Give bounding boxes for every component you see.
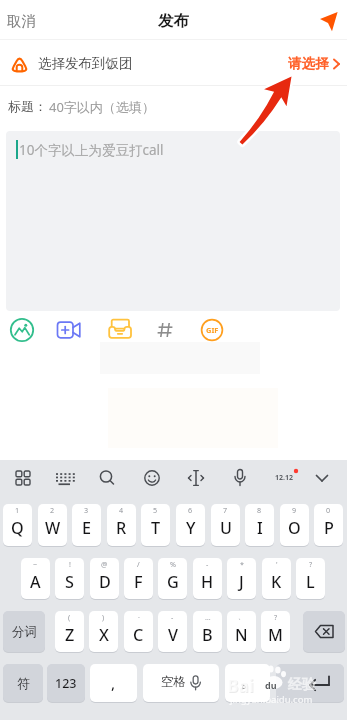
button[interactable]: GIF <box>200 318 224 342</box>
button[interactable] <box>308 464 336 492</box>
button[interactable] <box>56 318 84 342</box>
button[interactable]: 8 <box>245 504 274 546</box>
button[interactable] <box>93 464 121 492</box>
button[interactable]: / <box>124 558 153 599</box>
button[interactable]: 10个字以上为爱豆打call <box>6 131 340 311</box>
staticText: 10个字以上为爱豆打call <box>19 141 164 159</box>
staticText: K <box>271 571 282 593</box>
button[interactable] <box>103 317 133 341</box>
button[interactable]: 。 <box>225 664 270 702</box>
button[interactable] <box>303 611 345 652</box>
button[interactable]: % <box>158 558 187 599</box>
staticText: 7 <box>223 505 228 515</box>
button[interactable] <box>226 464 254 492</box>
button[interactable]: 分词 <box>3 611 45 652</box>
button[interactable]: 9 <box>280 504 309 546</box>
staticText: W <box>45 517 61 539</box>
button[interactable]: ! <box>55 558 84 599</box>
button[interactable]: ? <box>261 611 290 652</box>
staticText: 分词 <box>12 624 37 640</box>
staticText: 4 <box>119 505 124 515</box>
button[interactable]: , <box>90 664 137 702</box>
button[interactable] <box>182 464 210 492</box>
staticText: Bai <box>228 675 255 698</box>
staticText: ' <box>276 559 278 569</box>
staticText: - <box>206 559 209 569</box>
button[interactable] <box>156 321 174 339</box>
staticText: 5 <box>153 505 158 515</box>
staticText: 9 <box>292 505 297 515</box>
staticText: 。 <box>241 674 255 692</box>
staticText: F <box>134 571 143 593</box>
button[interactable] <box>9 464 37 492</box>
button[interactable]: 12.12 <box>272 464 302 492</box>
button[interactable]: 4 <box>107 504 136 546</box>
staticText: % <box>170 559 176 569</box>
button[interactable]: 3 <box>72 504 101 546</box>
button[interactable]: ~ <box>21 558 50 599</box>
staticText: ? <box>309 559 313 569</box>
button[interactable]: 1 <box>3 504 32 546</box>
button[interactable]: 符 <box>3 664 43 702</box>
button[interactable]: @ <box>90 558 119 599</box>
button[interactable]: 取消 <box>0 0 60 40</box>
staticText: D <box>99 571 111 593</box>
staticText: ( <box>68 612 71 622</box>
staticText: R <box>116 517 127 539</box>
staticText: … <box>205 612 211 622</box>
staticText: ? <box>274 612 278 622</box>
button[interactable]: 、 <box>227 611 256 652</box>
button[interactable]: 0 <box>314 504 343 546</box>
staticText: 、 <box>238 612 246 621</box>
staticText: 6 <box>188 505 193 515</box>
button[interactable]: 2 <box>38 504 67 546</box>
button[interactable]: 7 <box>211 504 240 546</box>
staticText: @ <box>101 559 108 569</box>
button[interactable] <box>143 664 219 702</box>
staticText: L <box>306 571 315 593</box>
staticText: 1 <box>15 505 20 515</box>
staticText: du <box>265 679 277 691</box>
staticText: 发布 <box>158 11 189 31</box>
staticText: 空格 <box>161 674 186 690</box>
button[interactable]: 选择发布到饭团 <box>0 40 347 85</box>
button[interactable]: * <box>227 558 256 599</box>
staticText: GIF <box>206 325 219 335</box>
staticText: Y <box>186 517 196 539</box>
button[interactable]: ? <box>296 558 325 599</box>
button[interactable] <box>276 664 344 702</box>
staticText: S <box>65 571 74 593</box>
button[interactable]: - <box>193 558 222 599</box>
button[interactable]: ( <box>55 611 84 652</box>
staticText: 选择发布到饭团 <box>38 55 133 72</box>
staticText: U <box>220 517 232 539</box>
staticText: 12.12 <box>275 473 293 483</box>
button[interactable]: 6 <box>176 504 205 546</box>
staticText: I <box>257 517 263 539</box>
button[interactable]: … <box>193 611 222 652</box>
button[interactable]: - <box>158 611 187 652</box>
staticText: 标题： <box>8 98 47 114</box>
button[interactable] <box>138 464 166 492</box>
staticText: H <box>201 571 214 593</box>
button[interactable] <box>314 6 344 36</box>
button[interactable]: · <box>124 611 153 652</box>
staticText: 3 <box>84 505 89 515</box>
staticText: T <box>151 517 161 539</box>
button[interactable]: 5 <box>141 504 170 546</box>
staticText: ~ <box>33 559 38 569</box>
button[interactable]: 123 <box>47 664 85 702</box>
button[interactable]: ' <box>262 558 291 599</box>
staticText: P <box>324 517 334 539</box>
staticText: G <box>167 571 179 593</box>
staticText: O <box>288 517 301 539</box>
button[interactable]: 标题： <box>0 86 347 126</box>
button[interactable] <box>50 464 78 492</box>
staticText: Z <box>65 624 75 646</box>
button[interactable]: ) <box>89 611 118 652</box>
staticText: 取消 <box>7 12 36 30</box>
staticText: , <box>111 673 116 693</box>
staticText: ) <box>102 612 105 622</box>
button[interactable] <box>9 317 35 343</box>
staticText: A <box>30 571 41 593</box>
